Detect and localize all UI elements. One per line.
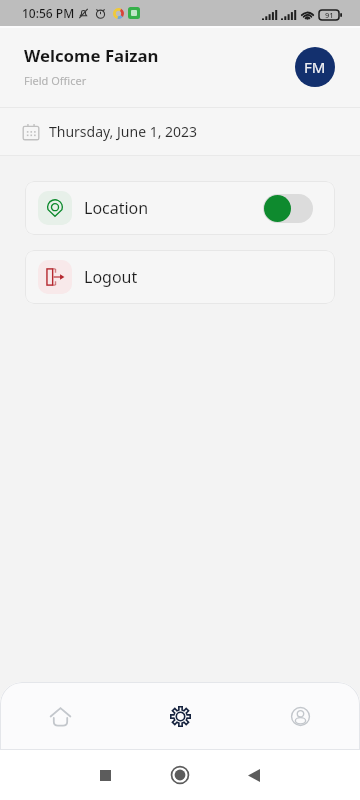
staticText: Thursday, June 1, 2023 (49, 122, 198, 141)
button[interactable]: Location toggle (263, 194, 313, 223)
button[interactable]: Profile avatar FM (295, 47, 335, 87)
button[interactable]: Settings (120, 682, 240, 750)
button[interactable]: Location toggle row (25, 181, 335, 235)
staticText: Location (84, 197, 149, 219)
button[interactable]: Home (0, 682, 120, 750)
staticText: 10:56 PM (22, 5, 75, 21)
button[interactable]: Logout (25, 250, 335, 304)
staticText: Welcome Faizan (24, 44, 159, 67)
staticText: Logout (84, 266, 138, 288)
staticText: FM (304, 57, 326, 77)
staticText: Field Officer (24, 73, 87, 88)
staticText: 91 (325, 10, 334, 20)
button[interactable]: Profile (240, 682, 360, 750)
